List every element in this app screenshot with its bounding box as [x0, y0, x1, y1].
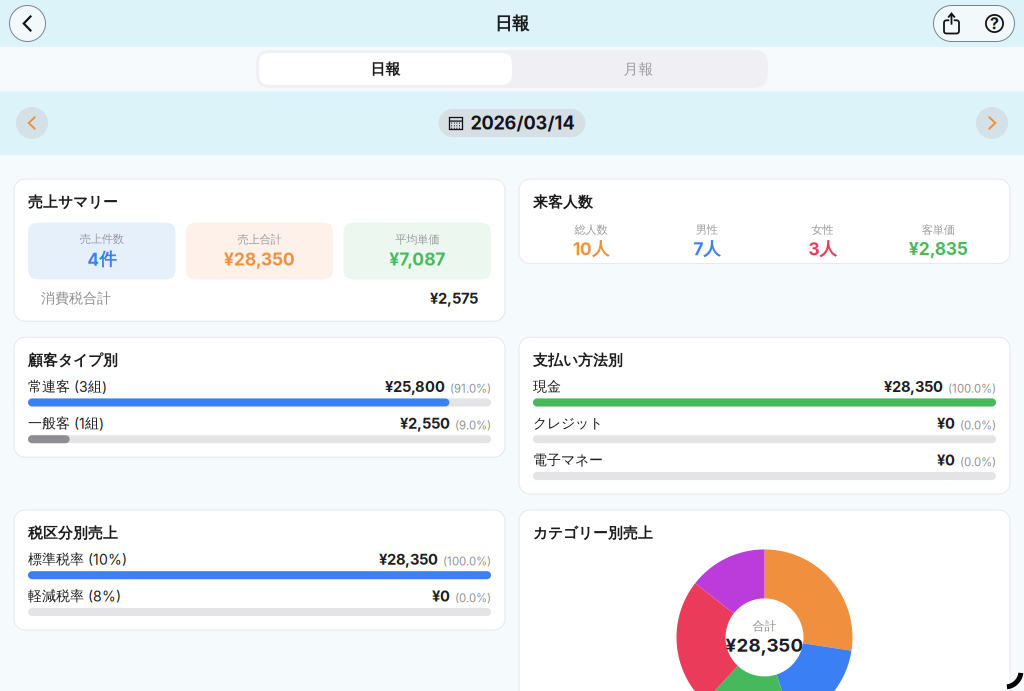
staticText: 支払い方法別: [533, 351, 623, 370]
staticText: 消費税合計: [41, 289, 111, 307]
staticText: 2026/03/14: [470, 112, 574, 134]
staticText: ¥25,800: [385, 378, 445, 395]
staticText: ¥2,835: [909, 238, 968, 259]
staticText: (91.0%): [450, 382, 491, 395]
button[interactable]: 2026/03/14: [438, 109, 585, 137]
staticText: ¥0: [432, 587, 450, 605]
staticText: カテゴリー別売上: [533, 524, 653, 542]
staticText: ?: [990, 14, 999, 33]
staticText: ¥28,350: [725, 634, 803, 656]
button[interactable]: 日報: [259, 53, 512, 85]
staticText: (0.0%): [455, 591, 491, 605]
staticText: 軽減税率 (8%): [28, 587, 121, 605]
button[interactable]: 月報: [512, 53, 765, 85]
staticText: ¥2,550: [400, 414, 450, 432]
button[interactable]: Share and Help: [933, 5, 1015, 42]
staticText: ¥28,350: [379, 550, 438, 568]
staticText: 電子マネー: [533, 451, 603, 469]
staticText: 売上件数: [80, 232, 124, 246]
staticText: クレジット: [533, 415, 603, 432]
staticText: 男性: [696, 222, 718, 237]
button[interactable]: Back: [9, 5, 46, 42]
staticText: 日報: [370, 60, 400, 78]
staticText: 標準税率 (10%): [28, 550, 127, 568]
staticText: (9.0%): [455, 418, 491, 432]
staticText: 10人: [573, 238, 609, 260]
staticText: ¥0: [937, 451, 955, 469]
staticText: (0.0%): [960, 455, 996, 469]
staticText: ¥0: [937, 414, 955, 432]
staticText: 総人数: [574, 222, 607, 237]
staticText: 常連客 (3組): [28, 378, 107, 395]
staticText: 3人: [808, 238, 836, 260]
staticText: 平均単価: [395, 232, 439, 247]
staticText: 客単価: [922, 223, 955, 237]
staticText: 来客人数: [533, 193, 593, 211]
staticText: 顧客タイプ別: [28, 351, 118, 370]
staticText: 一般客 (1組): [28, 415, 104, 432]
staticText: 4件: [87, 248, 116, 270]
staticText: 税区分別売上: [28, 524, 118, 542]
staticText: 売上サマリー: [28, 193, 118, 211]
staticText: ¥28,350: [224, 249, 295, 270]
staticText: (100.0%): [443, 554, 491, 568]
staticText: 7人: [693, 238, 720, 260]
staticText: 女性: [811, 222, 833, 237]
staticText: ¥7,087: [389, 249, 445, 270]
staticText: (0.0%): [960, 418, 996, 432]
button[interactable]: Next day: [976, 107, 1008, 139]
staticText: 合計: [752, 619, 776, 634]
staticText: 月報: [623, 60, 653, 78]
staticText: 現金: [533, 378, 561, 395]
staticText: ¥2,575: [430, 289, 478, 307]
staticText: (100.0%): [948, 382, 996, 395]
staticText: 日報: [495, 13, 529, 34]
button[interactable]: Previous day: [16, 107, 48, 139]
staticText: ¥28,350: [884, 378, 943, 395]
staticText: 売上合計: [237, 232, 281, 247]
